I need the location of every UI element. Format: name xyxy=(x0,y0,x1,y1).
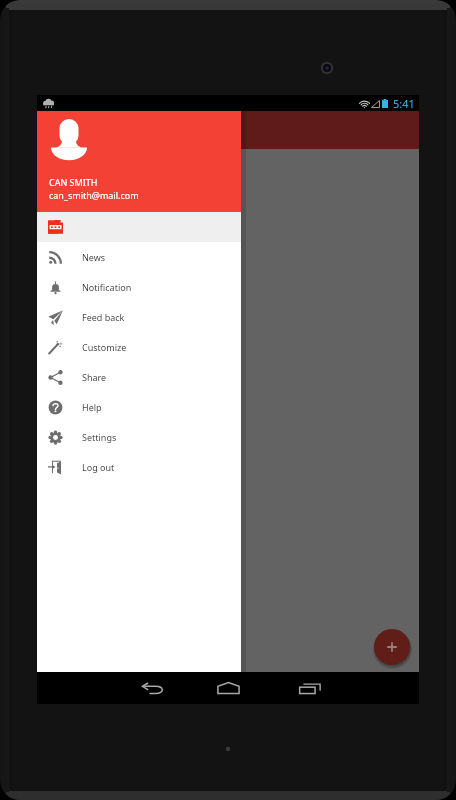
staticText: Log out xyxy=(82,461,115,473)
button[interactable]: Add xyxy=(374,629,410,665)
button[interactable]: News xyxy=(37,242,241,272)
staticText: CAN SMITH xyxy=(49,176,98,188)
button[interactable]: Notification xyxy=(37,272,241,302)
staticText: News xyxy=(82,251,106,263)
staticText: Share xyxy=(82,371,107,383)
button[interactable]: Recent apps xyxy=(298,676,321,700)
button[interactable]: Log out xyxy=(37,452,241,482)
staticText: 5:41 xyxy=(393,96,415,111)
button[interactable]: Help xyxy=(37,392,241,422)
button[interactable]: Back xyxy=(141,676,164,700)
staticText: can_smith@mail.com xyxy=(49,189,139,201)
button[interactable]: Customize xyxy=(37,332,241,362)
button[interactable]: Toolbox xyxy=(37,212,241,242)
button[interactable]: Home xyxy=(217,676,240,700)
staticText: Feed back xyxy=(82,311,125,323)
button[interactable]: Feed back xyxy=(37,302,241,332)
staticText: Customize xyxy=(82,341,127,353)
button[interactable]: Settings xyxy=(37,422,241,452)
button[interactable]: Share xyxy=(37,362,241,392)
staticText: Notification xyxy=(82,281,132,293)
staticText: Help xyxy=(82,401,102,413)
staticText: Settings xyxy=(82,431,117,443)
